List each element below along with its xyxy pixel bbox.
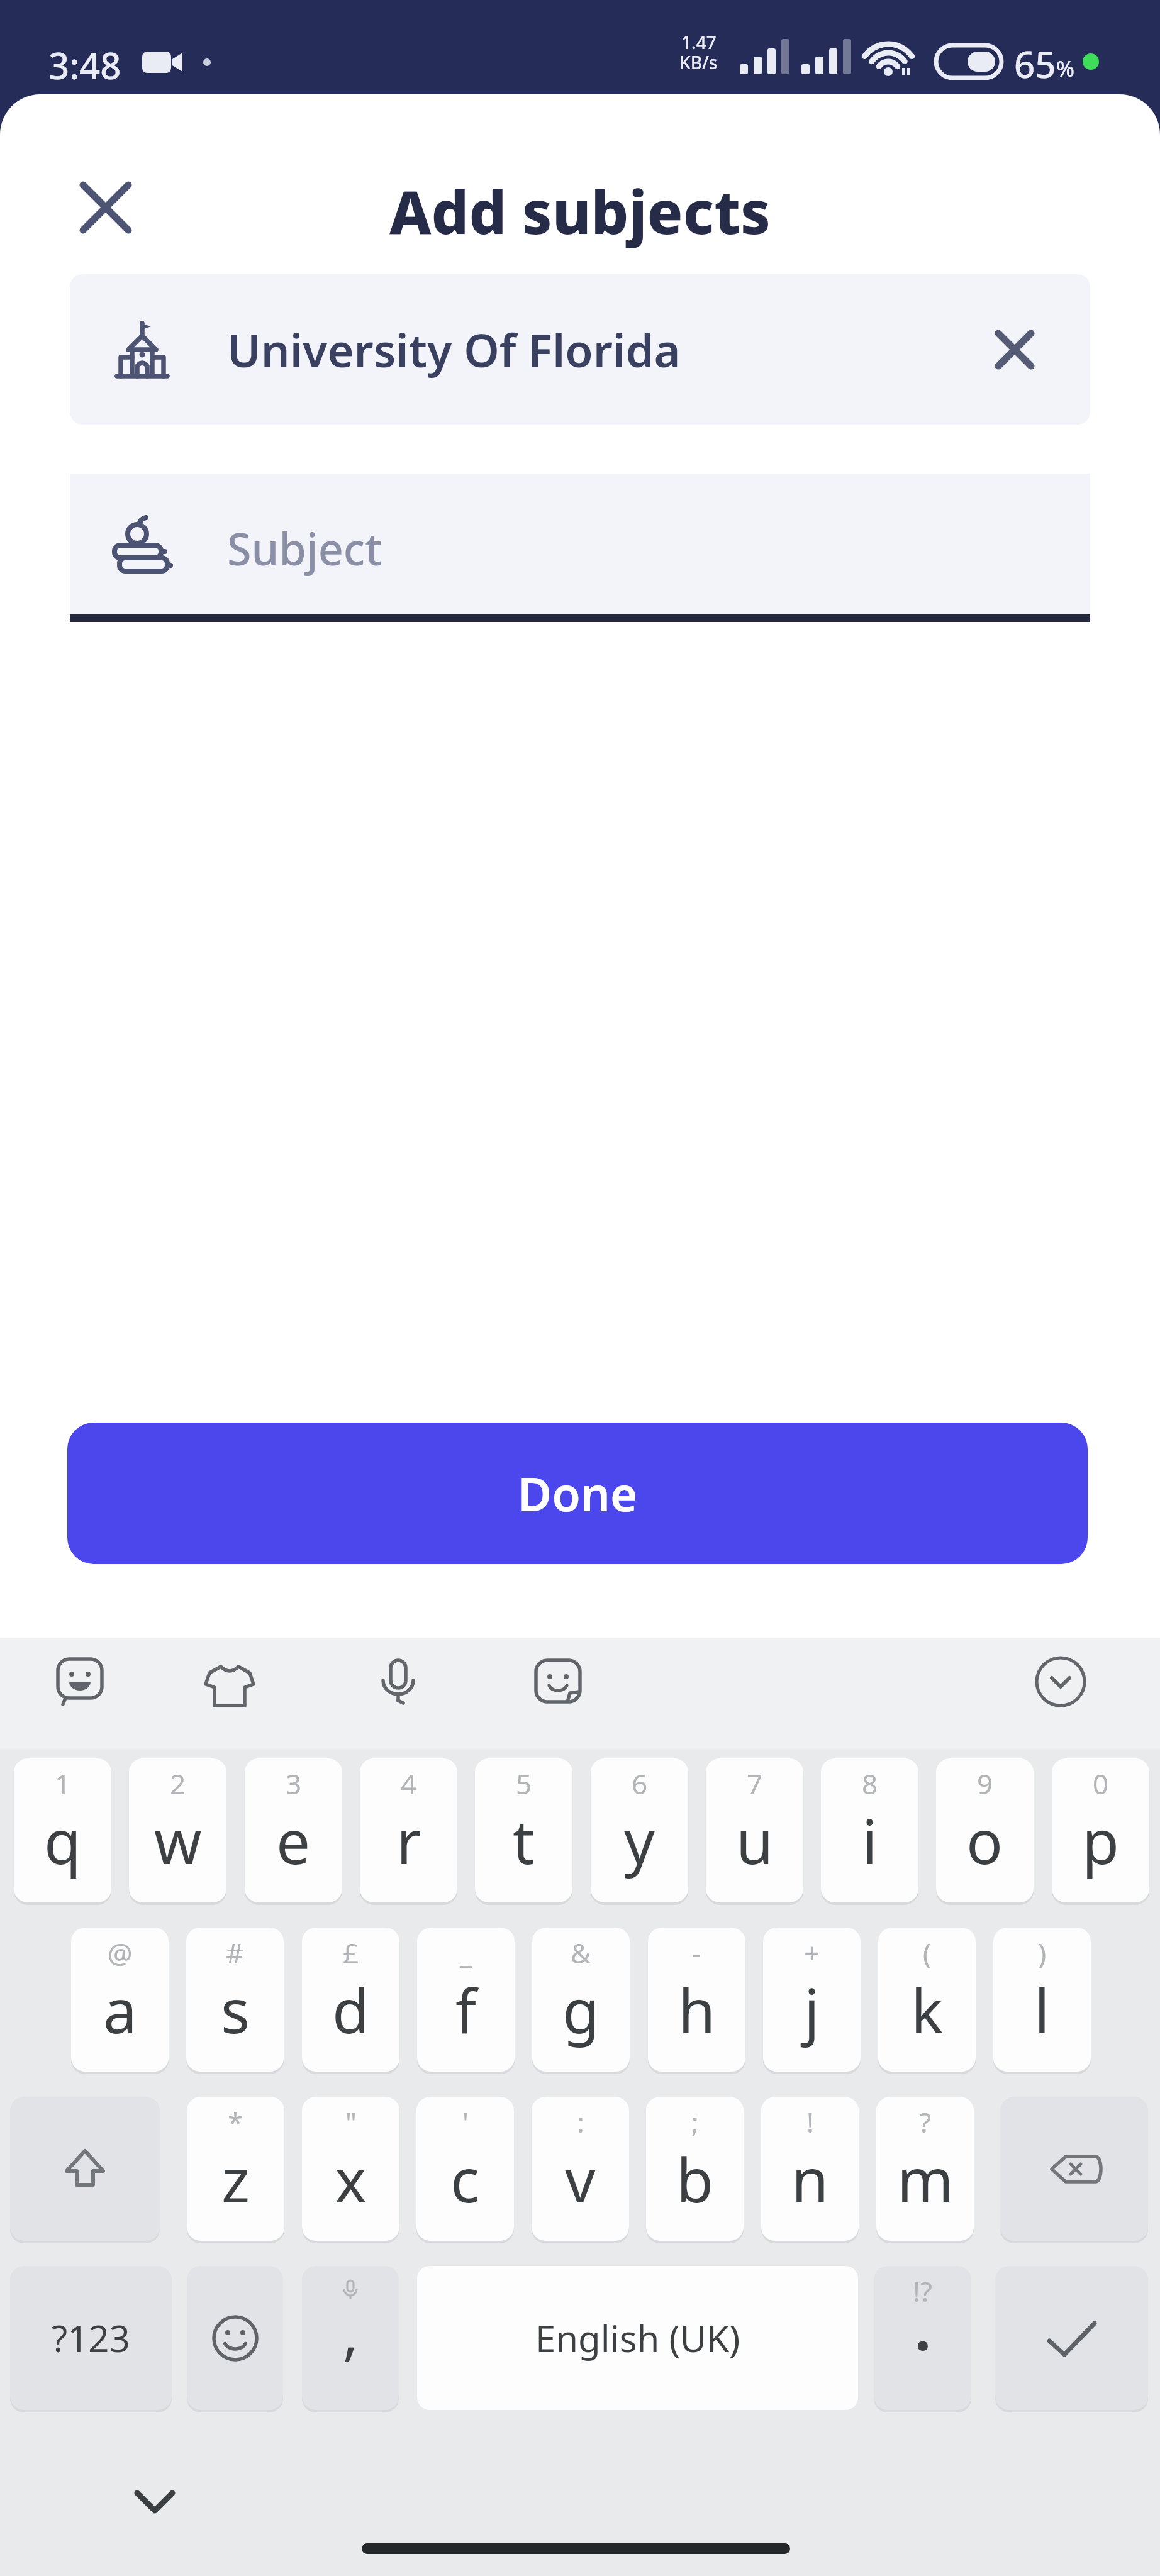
staticText: v	[565, 2138, 596, 2220]
button[interactable]: ?123	[10, 2266, 172, 2410]
staticText: a	[103, 1968, 137, 2051]
staticText: p	[1082, 1799, 1120, 1882]
button[interactable]: 8	[821, 1758, 918, 1902]
button[interactable]: (	[878, 1928, 976, 2072]
button[interactable]: #	[186, 1928, 284, 2072]
button[interactable]	[52, 1653, 108, 1709]
button[interactable]: _	[417, 1928, 515, 2072]
staticText: t	[513, 1799, 535, 1882]
staticText: !?	[913, 2272, 932, 2310]
button[interactable]: 0	[1052, 1758, 1149, 1902]
staticText: d	[332, 1968, 370, 2051]
button[interactable]: English (UK)	[417, 2266, 858, 2410]
staticText: 3:48	[48, 40, 121, 90]
button[interactable]: Subject	[70, 474, 1090, 622]
button[interactable]	[983, 318, 1046, 381]
staticText: _	[460, 1934, 472, 1972]
staticText: !	[806, 2103, 814, 2141]
button[interactable]: 3	[245, 1758, 342, 1902]
staticText: University Of Florida	[227, 319, 681, 380]
button[interactable]: University Of Florida	[70, 274, 1090, 425]
staticText: ,	[343, 2292, 359, 2371]
button[interactable]	[198, 1653, 261, 1716]
staticText: Add subjects	[0, 171, 1160, 252]
button[interactable]	[528, 1653, 588, 1713]
button[interactable]	[10, 2097, 160, 2241]
button[interactable]: 5	[475, 1758, 572, 1902]
button[interactable]: Done	[67, 1423, 1088, 1564]
staticText: g	[562, 1968, 600, 2051]
staticText: 1.47	[681, 30, 717, 54]
staticText: w	[154, 1799, 202, 1882]
staticText: )	[1038, 1934, 1047, 1972]
button[interactable]: 6	[591, 1758, 688, 1902]
staticText: "	[345, 2103, 357, 2141]
staticText: @	[108, 1934, 133, 1972]
button[interactable]: 9	[936, 1758, 1034, 1902]
staticText: ?	[919, 2103, 932, 2141]
button[interactable]: &	[532, 1928, 630, 2072]
button[interactable]	[1032, 1653, 1090, 1711]
staticText: 65	[1014, 39, 1056, 89]
button[interactable]: 1	[14, 1758, 111, 1902]
button[interactable]: ?	[876, 2097, 974, 2241]
staticText: u	[736, 1799, 774, 1882]
button[interactable]: +	[763, 1928, 861, 2072]
staticText: r	[396, 1799, 421, 1882]
staticText: o	[966, 1799, 1003, 1882]
staticText: j	[804, 1968, 820, 2051]
staticText: Subject	[227, 518, 382, 578]
button[interactable]: '	[416, 2097, 514, 2241]
staticText: l	[1034, 1968, 1050, 2051]
staticText: 4	[401, 1765, 417, 1802]
button[interactable]	[1000, 2097, 1148, 2241]
staticText: f	[455, 1968, 477, 2051]
button[interactable]: 4	[360, 1758, 457, 1902]
staticText: b	[676, 2138, 714, 2220]
button[interactable]: 7	[706, 1758, 803, 1902]
button[interactable]: @	[71, 1928, 169, 2072]
staticText: English (UK)	[535, 2313, 740, 2363]
button[interactable]	[368, 1653, 428, 1713]
staticText: c	[450, 2138, 480, 2220]
staticText: n	[791, 2138, 829, 2220]
staticText: i	[862, 1799, 878, 1882]
staticText: ;	[691, 2103, 699, 2141]
button[interactable]: !?	[874, 2266, 971, 2410]
button[interactable]	[995, 2266, 1148, 2410]
button[interactable]: ,	[302, 2266, 399, 2410]
button[interactable]: -	[648, 1928, 745, 2072]
staticText: Done	[518, 1462, 638, 1525]
staticText: &	[571, 1934, 591, 1972]
button[interactable]: :	[532, 2097, 629, 2241]
staticText: 8	[862, 1765, 878, 1802]
button[interactable]: *	[187, 2097, 284, 2241]
staticText: (	[923, 1934, 932, 1972]
staticText: 0	[1093, 1765, 1109, 1802]
staticText: 2	[170, 1765, 186, 1802]
staticText: '	[462, 2103, 469, 2141]
staticText: h	[678, 1968, 716, 2051]
button[interactable]: ;	[646, 2097, 744, 2241]
staticText: KB/s	[679, 50, 718, 74]
staticText: #	[226, 1934, 244, 1972]
button[interactable]: )	[993, 1928, 1091, 2072]
button[interactable]: £	[302, 1928, 399, 2072]
staticText: 7	[747, 1765, 763, 1802]
staticText: ?123	[52, 2313, 130, 2363]
button[interactable]	[187, 2266, 283, 2410]
button[interactable]	[69, 171, 142, 244]
button[interactable]: 2	[129, 1758, 226, 1902]
staticText: e	[276, 1799, 311, 1882]
staticText: q	[44, 1799, 82, 1882]
staticText: m	[897, 2138, 954, 2220]
staticText: x	[335, 2138, 367, 2220]
staticText: k	[911, 1968, 944, 2051]
staticText: %	[1056, 54, 1074, 83]
button[interactable]: "	[302, 2097, 399, 2241]
button[interactable]: !	[761, 2097, 859, 2241]
staticText: z	[221, 2138, 250, 2220]
staticText: 9	[977, 1765, 993, 1802]
staticText: £	[343, 1934, 359, 1972]
staticText: 1	[55, 1765, 71, 1802]
